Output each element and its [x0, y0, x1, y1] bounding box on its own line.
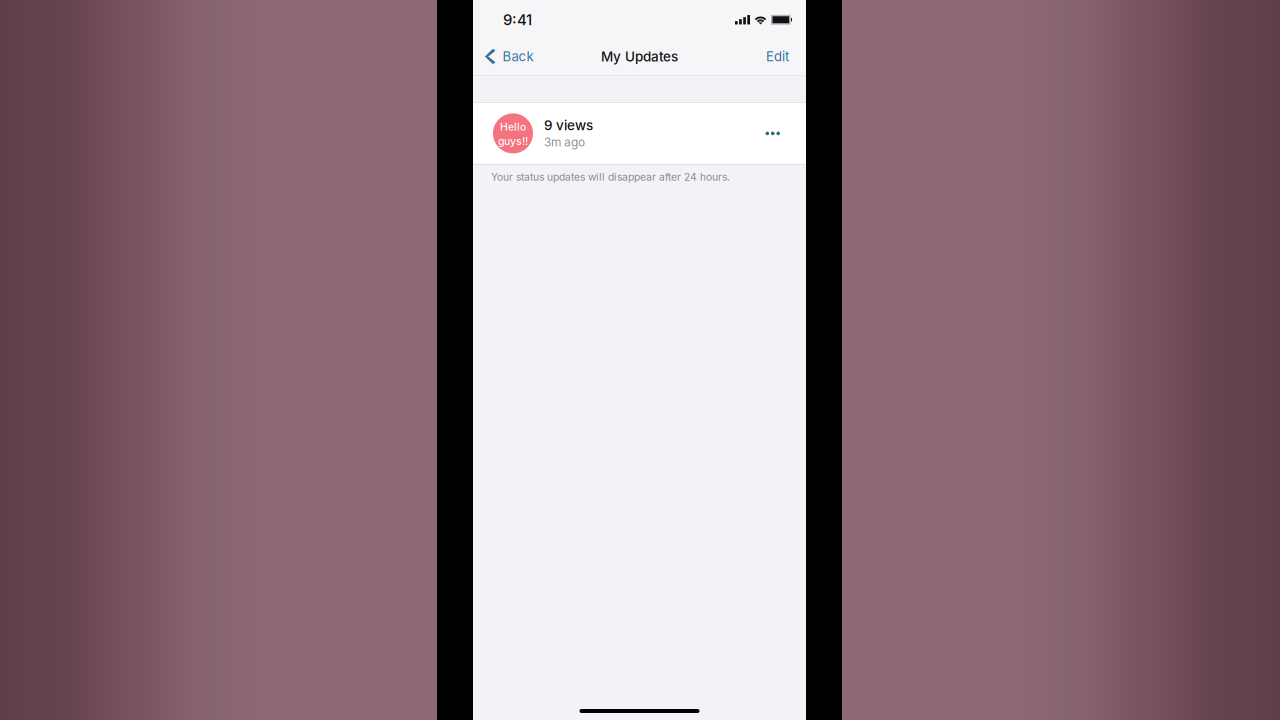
staticText: 9:41 [503, 11, 532, 29]
staticText: Hello [500, 121, 526, 133]
staticText: Edit [766, 48, 789, 64]
button[interactable]: My status update, 9 views, 3m ago [473, 103, 806, 164]
staticText: 3m ago [544, 135, 585, 149]
staticText: My Updates [601, 48, 678, 65]
staticText: guys!! [498, 135, 528, 148]
staticText: 9 views [544, 117, 593, 134]
button[interactable]: Back [473, 38, 543, 75]
staticText: Your status updates will disappear after… [491, 171, 730, 183]
staticText: Back [502, 48, 533, 64]
button[interactable]: Edit [752, 38, 806, 75]
